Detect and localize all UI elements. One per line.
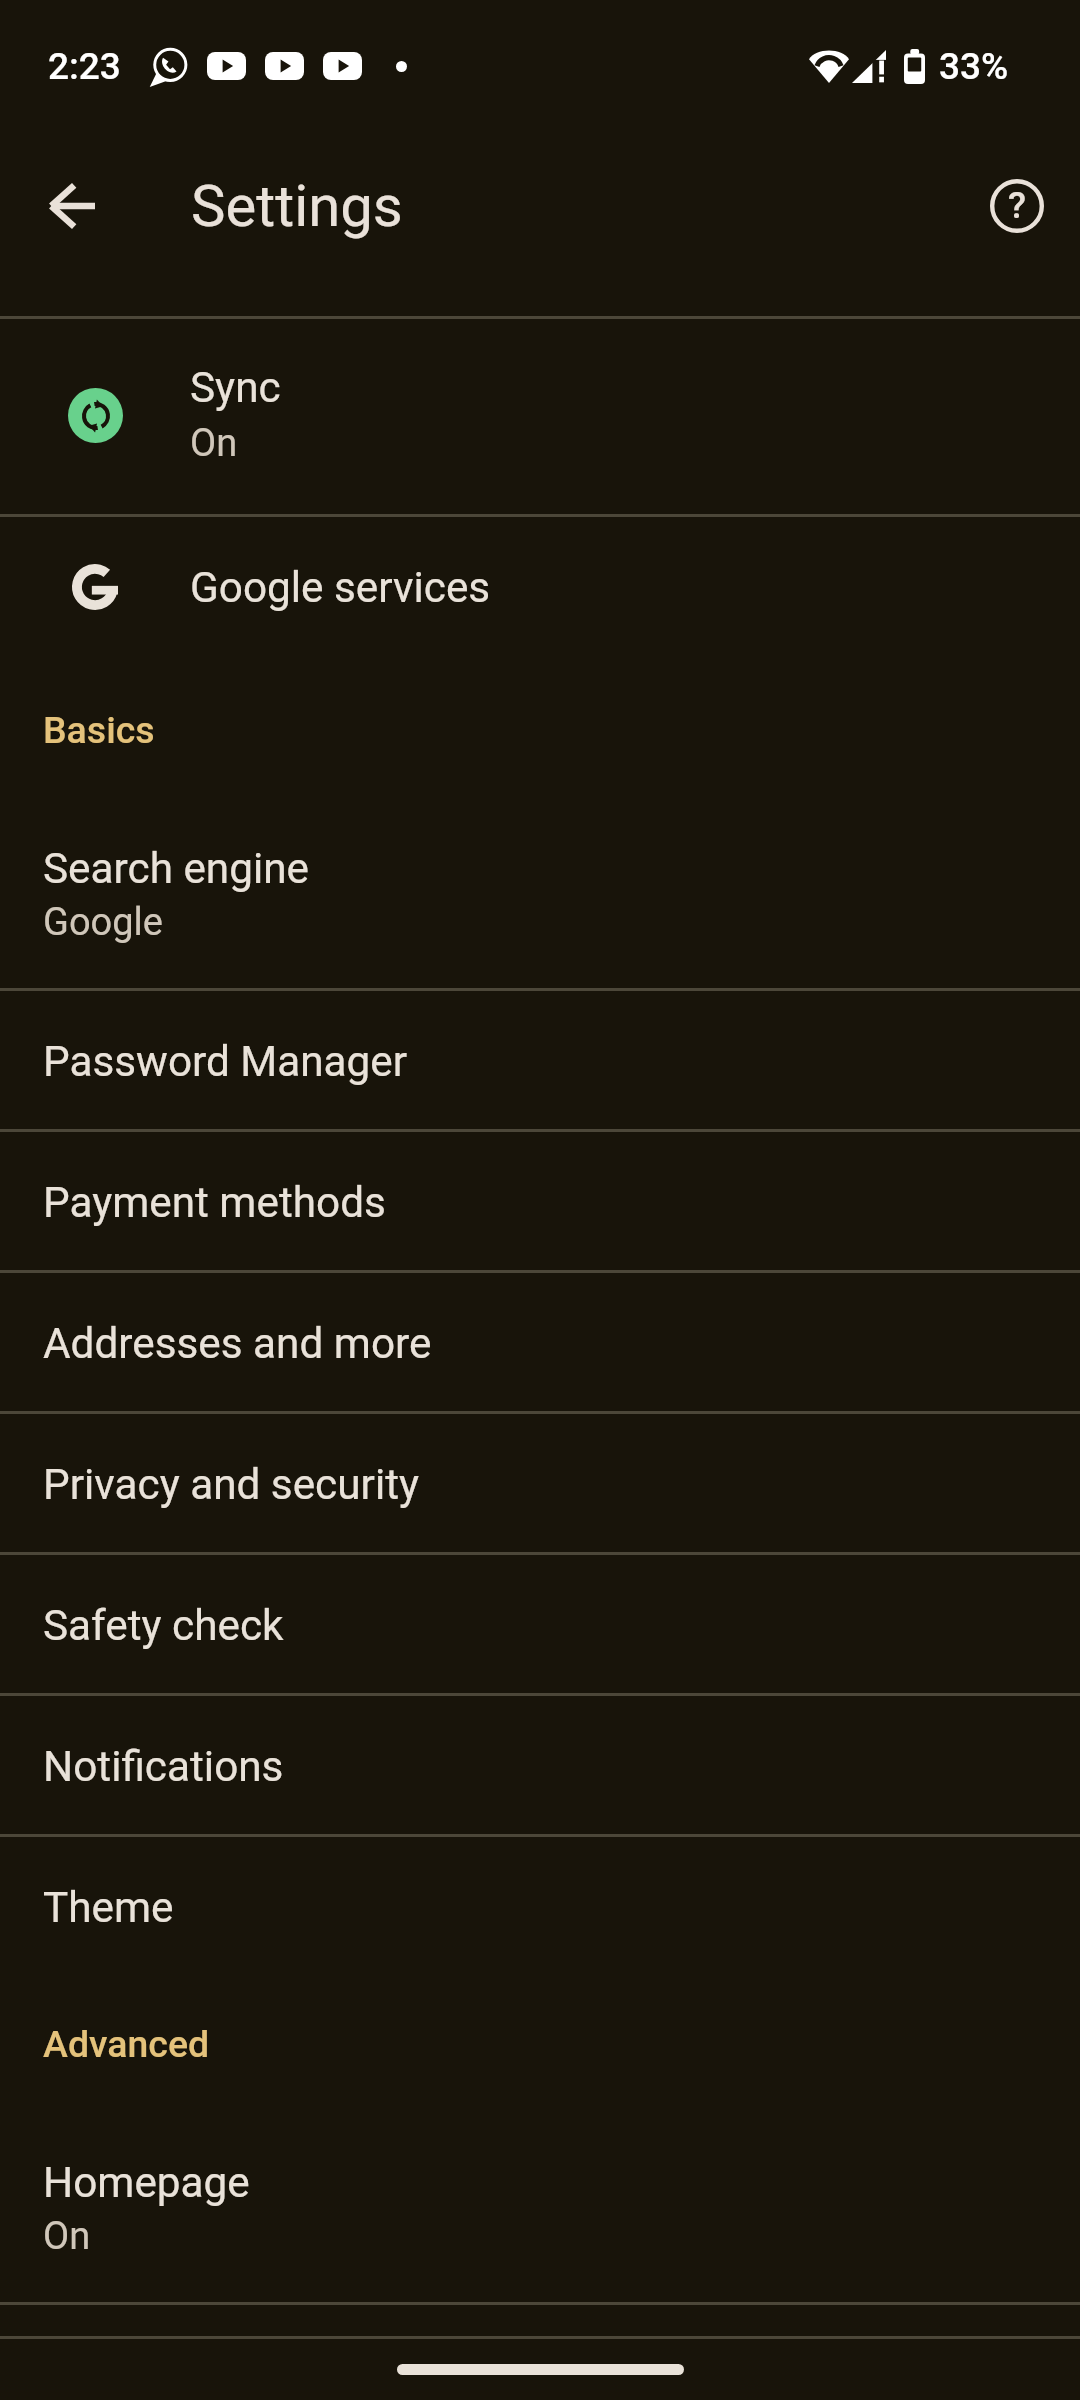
staticText: Notifications xyxy=(43,1742,284,1792)
button[interactable]: Help xyxy=(947,136,1080,276)
button[interactable]: Payment methods xyxy=(0,1132,1080,1270)
staticText: Password Manager xyxy=(43,1037,408,1087)
staticText: On xyxy=(43,2214,91,2259)
staticText: Search engine xyxy=(43,844,310,894)
button[interactable]: Notifications xyxy=(0,1696,1080,1834)
staticText: Payment methods xyxy=(43,1178,386,1228)
staticText: Sync xyxy=(190,363,281,413)
button[interactable]: Addresses and more xyxy=(0,1273,1080,1411)
staticText: Homepage xyxy=(43,2158,250,2208)
staticText: On xyxy=(190,421,238,466)
button[interactable]: Search engine xyxy=(0,518,1080,988)
staticText: Google services xyxy=(190,563,491,613)
button[interactable]: Back xyxy=(4,136,144,276)
staticText: Basics xyxy=(43,708,155,752)
staticText: Settings xyxy=(191,172,403,240)
staticText: Theme xyxy=(43,1883,174,1933)
button[interactable]: Sync xyxy=(0,320,1080,514)
button[interactable]: Privacy and security xyxy=(0,1414,1080,1552)
staticText: Addresses and more xyxy=(43,1319,432,1369)
staticText: Safety check xyxy=(43,1601,284,1651)
staticText: Advanced xyxy=(43,2022,210,2066)
staticText: Privacy and security xyxy=(43,1460,420,1510)
button[interactable]: Theme xyxy=(0,1837,1080,1942)
staticText: ? xyxy=(1008,184,1027,227)
button[interactable]: Homepage xyxy=(0,2100,1080,2302)
button[interactable]: Password Manager xyxy=(0,991,1080,1129)
staticText: Google xyxy=(43,900,163,945)
button[interactable]: Google services xyxy=(0,518,1080,668)
staticText: 33% xyxy=(939,45,1009,88)
button[interactable]: Safety check xyxy=(0,1555,1080,1693)
staticText: 2:23 xyxy=(48,45,121,88)
